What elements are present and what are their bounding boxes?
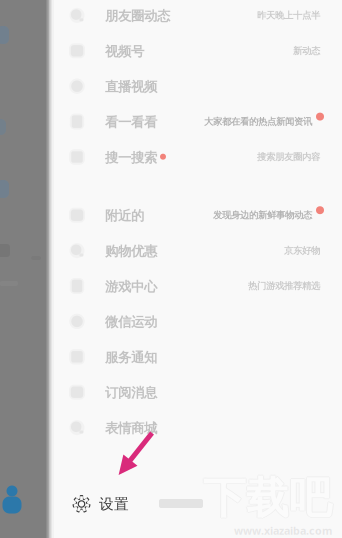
staticText: 直播视频 <box>105 79 157 95</box>
staticText: www.xiazaiba.com <box>234 523 332 538</box>
staticText: 看一看看 <box>105 114 157 130</box>
button[interactable]: 附近的 <box>50 197 342 233</box>
button[interactable]: 订阅消息 <box>50 374 342 410</box>
staticText: 表情商城 <box>105 420 157 436</box>
button[interactable]: 表情商城 <box>50 410 342 445</box>
button[interactable]: 朋友圈动态 <box>50 0 342 33</box>
staticText: 热门游戏推荐精选 <box>248 280 320 292</box>
staticText: 新动态 <box>293 45 320 57</box>
staticText: 服务通知 <box>105 349 157 366</box>
staticText: 大家都在看的热点新闻资讯 <box>204 116 312 127</box>
staticText: 设置 <box>99 495 129 513</box>
button[interactable]: 看一看看 <box>50 104 342 139</box>
button[interactable]: 搜一搜索 <box>50 139 342 175</box>
staticText: 订阅消息 <box>105 385 157 401</box>
staticText: 京东好物 <box>284 245 320 256</box>
staticText: 发现身边的新鲜事物动态 <box>213 209 312 221</box>
button[interactable]: 视频号 <box>50 33 342 68</box>
staticText: 朋友圈动态 <box>105 8 170 24</box>
staticText: 搜索朋友圈内容 <box>257 151 320 163</box>
button[interactable]: 设置 <box>50 481 342 527</box>
button[interactable]: 微信运动 <box>50 304 342 339</box>
button[interactable]: 购物优惠 <box>50 233 342 268</box>
button[interactable]: 直播视频 <box>50 68 342 104</box>
staticText: 昨天晚上十点半 <box>257 10 320 21</box>
button[interactable]: 服务通知 <box>50 339 342 374</box>
staticText: 购物优惠 <box>105 243 157 259</box>
staticText: 微信运动 <box>105 314 157 330</box>
staticText: 附近的 <box>105 208 144 224</box>
button[interactable]: 游戏中心 <box>50 268 342 304</box>
staticText: 游戏中心 <box>105 278 157 295</box>
staticText: 视频号 <box>105 43 144 60</box>
staticText: 搜一搜索 <box>105 149 157 166</box>
